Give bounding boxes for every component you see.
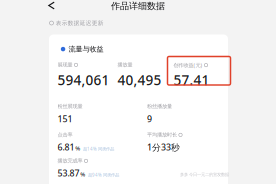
staticText: 流量与收益	[68, 45, 103, 54]
staticText: 53.87	[57, 167, 79, 179]
staticText: 9	[147, 113, 152, 125]
staticText: 作品详细数据	[111, 0, 165, 12]
staticText: 平均播放时长	[147, 132, 177, 138]
staticText: 1分33秒	[147, 141, 180, 153]
staticText: 粉丝展现量	[57, 103, 82, 109]
staticText: 创作收益(元)	[173, 62, 202, 69]
staticText: 播放完成率	[57, 158, 82, 164]
staticText: 展现量	[57, 62, 72, 68]
staticText: 超94% 同类作品	[88, 172, 119, 178]
staticText: 57.41	[173, 71, 209, 89]
staticText: 超14% 同类作品	[83, 146, 114, 152]
staticText: 594,061	[57, 71, 109, 89]
staticText: 点击率	[57, 132, 72, 138]
staticText: 多多 今日一元二的宣发数据	[180, 172, 229, 177]
staticText: 粉丝播放量	[147, 103, 172, 109]
staticText: %	[75, 144, 80, 152]
staticText: %	[80, 170, 85, 178]
staticText: 表示数据延迟更新	[56, 19, 104, 27]
staticText: 播放量	[117, 62, 132, 68]
staticText: 151	[57, 113, 72, 125]
button[interactable]: Back	[45, 0, 58, 12]
staticText: 40,495	[117, 71, 161, 89]
staticText: 6.81	[57, 141, 74, 153]
